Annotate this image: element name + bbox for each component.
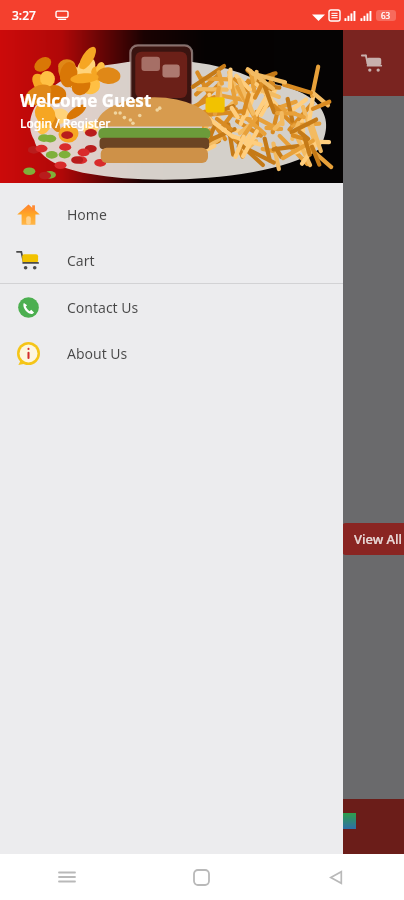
staticText: Cart: [67, 251, 95, 270]
staticText: 3:27: [12, 7, 36, 23]
button[interactable]: Login / Register: [20, 115, 111, 131]
staticText: Contact Us: [67, 298, 139, 317]
button[interactable]: About Us: [0, 330, 343, 376]
staticText: Home: [67, 205, 107, 224]
staticText: 63: [381, 10, 391, 21]
button[interactable]: Back: [269, 854, 404, 900]
button[interactable]: Home: [134, 854, 269, 900]
staticText: View All: [354, 530, 403, 548]
button[interactable]: Home: [0, 191, 343, 237]
button[interactable]: Recents: [0, 854, 134, 900]
button[interactable]: Cart: [0, 237, 343, 283]
button[interactable]: View All: [342, 523, 404, 555]
button[interactable]: Contact Us: [0, 284, 343, 330]
staticText: About Us: [67, 344, 128, 363]
button[interactable]: Cart: [352, 43, 392, 83]
staticText: Welcome Guest: [20, 89, 152, 112]
